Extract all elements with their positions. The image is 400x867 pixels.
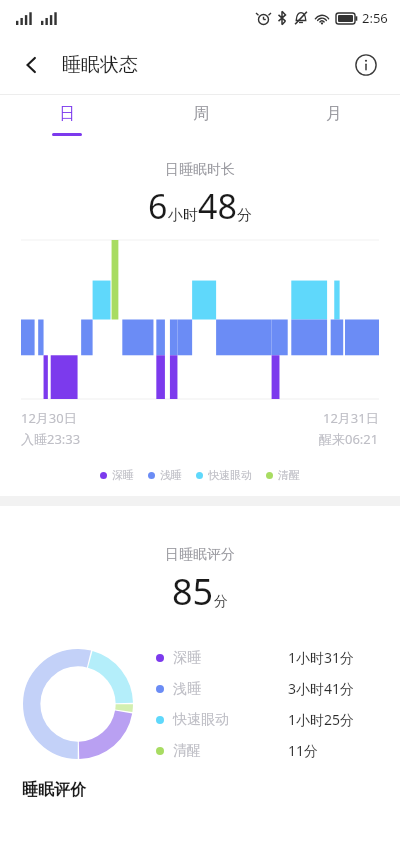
staticText: 月 [326, 104, 342, 124]
staticText: 快速眼动 [173, 711, 229, 729]
staticText: 周 [193, 104, 209, 124]
staticText: 2:56 [362, 9, 388, 27]
staticText: 3小时41分 [288, 679, 380, 698]
staticText: 日 [59, 104, 75, 124]
staticText: 48 [198, 183, 237, 229]
staticText: 85 [172, 567, 214, 616]
staticText: 醒来06:21 [319, 430, 379, 448]
staticText: 快速眼动 [208, 468, 252, 482]
staticText: 分 [237, 206, 252, 225]
staticText: 日睡眠评分 [165, 546, 235, 564]
staticText: 深睡 [112, 468, 134, 482]
button[interactable]: 周 [134, 95, 267, 147]
button[interactable]: 浅睡 [156, 673, 380, 704]
staticText: 浅睡 [173, 680, 201, 698]
button[interactable]: 日 [0, 95, 134, 147]
button[interactable]: 快速眼动 [156, 704, 380, 735]
staticText: 睡眠评价 [22, 780, 86, 800]
staticText: 1小时25分 [288, 710, 380, 729]
staticText: 6 [148, 183, 168, 229]
staticText: 日睡眠时长 [165, 161, 235, 179]
staticText: 清醒 [278, 468, 300, 482]
staticText: 12月31日 [323, 409, 379, 427]
staticText: 浅睡 [160, 468, 182, 482]
staticText: 清醒 [173, 742, 201, 760]
button[interactable]: Back [10, 43, 54, 87]
button[interactable]: 深睡 [156, 642, 380, 673]
staticText: 深睡 [173, 649, 201, 667]
staticText: 1小时31分 [288, 648, 380, 667]
button[interactable]: 月 [267, 95, 400, 147]
staticText: 睡眠状态 [62, 53, 138, 77]
staticText: 入睡23:33 [21, 430, 81, 448]
staticText: 分 [214, 593, 228, 611]
staticText: 小时 [168, 206, 198, 225]
staticText: 11分 [288, 741, 380, 760]
staticText: 12月30日 [21, 409, 77, 427]
button[interactable]: 清醒 [156, 735, 380, 766]
button[interactable]: Information [344, 43, 388, 87]
